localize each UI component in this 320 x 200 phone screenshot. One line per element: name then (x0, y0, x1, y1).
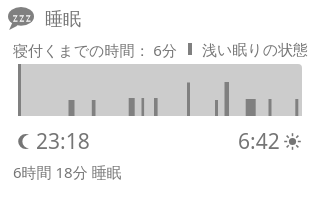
staticText: 23:18 (36, 127, 90, 156)
staticText: 浅い眠りの状態 (202, 41, 309, 60)
other: Wake up (284, 133, 301, 150)
staticText: 寝付くまでの時間： 6分 (13, 40, 177, 60)
other: Bedtime (21, 134, 32, 149)
button[interactable]: 6:42 (238, 127, 301, 156)
other: Sleep (8, 7, 34, 30)
staticText: 6時間 18分 睡眠 (13, 162, 122, 182)
staticText: 睡眠 (45, 8, 81, 31)
staticText: 6:42 (238, 127, 280, 156)
button[interactable]: Sleep (8, 7, 81, 30)
button[interactable]: Bedtime (21, 127, 90, 156)
